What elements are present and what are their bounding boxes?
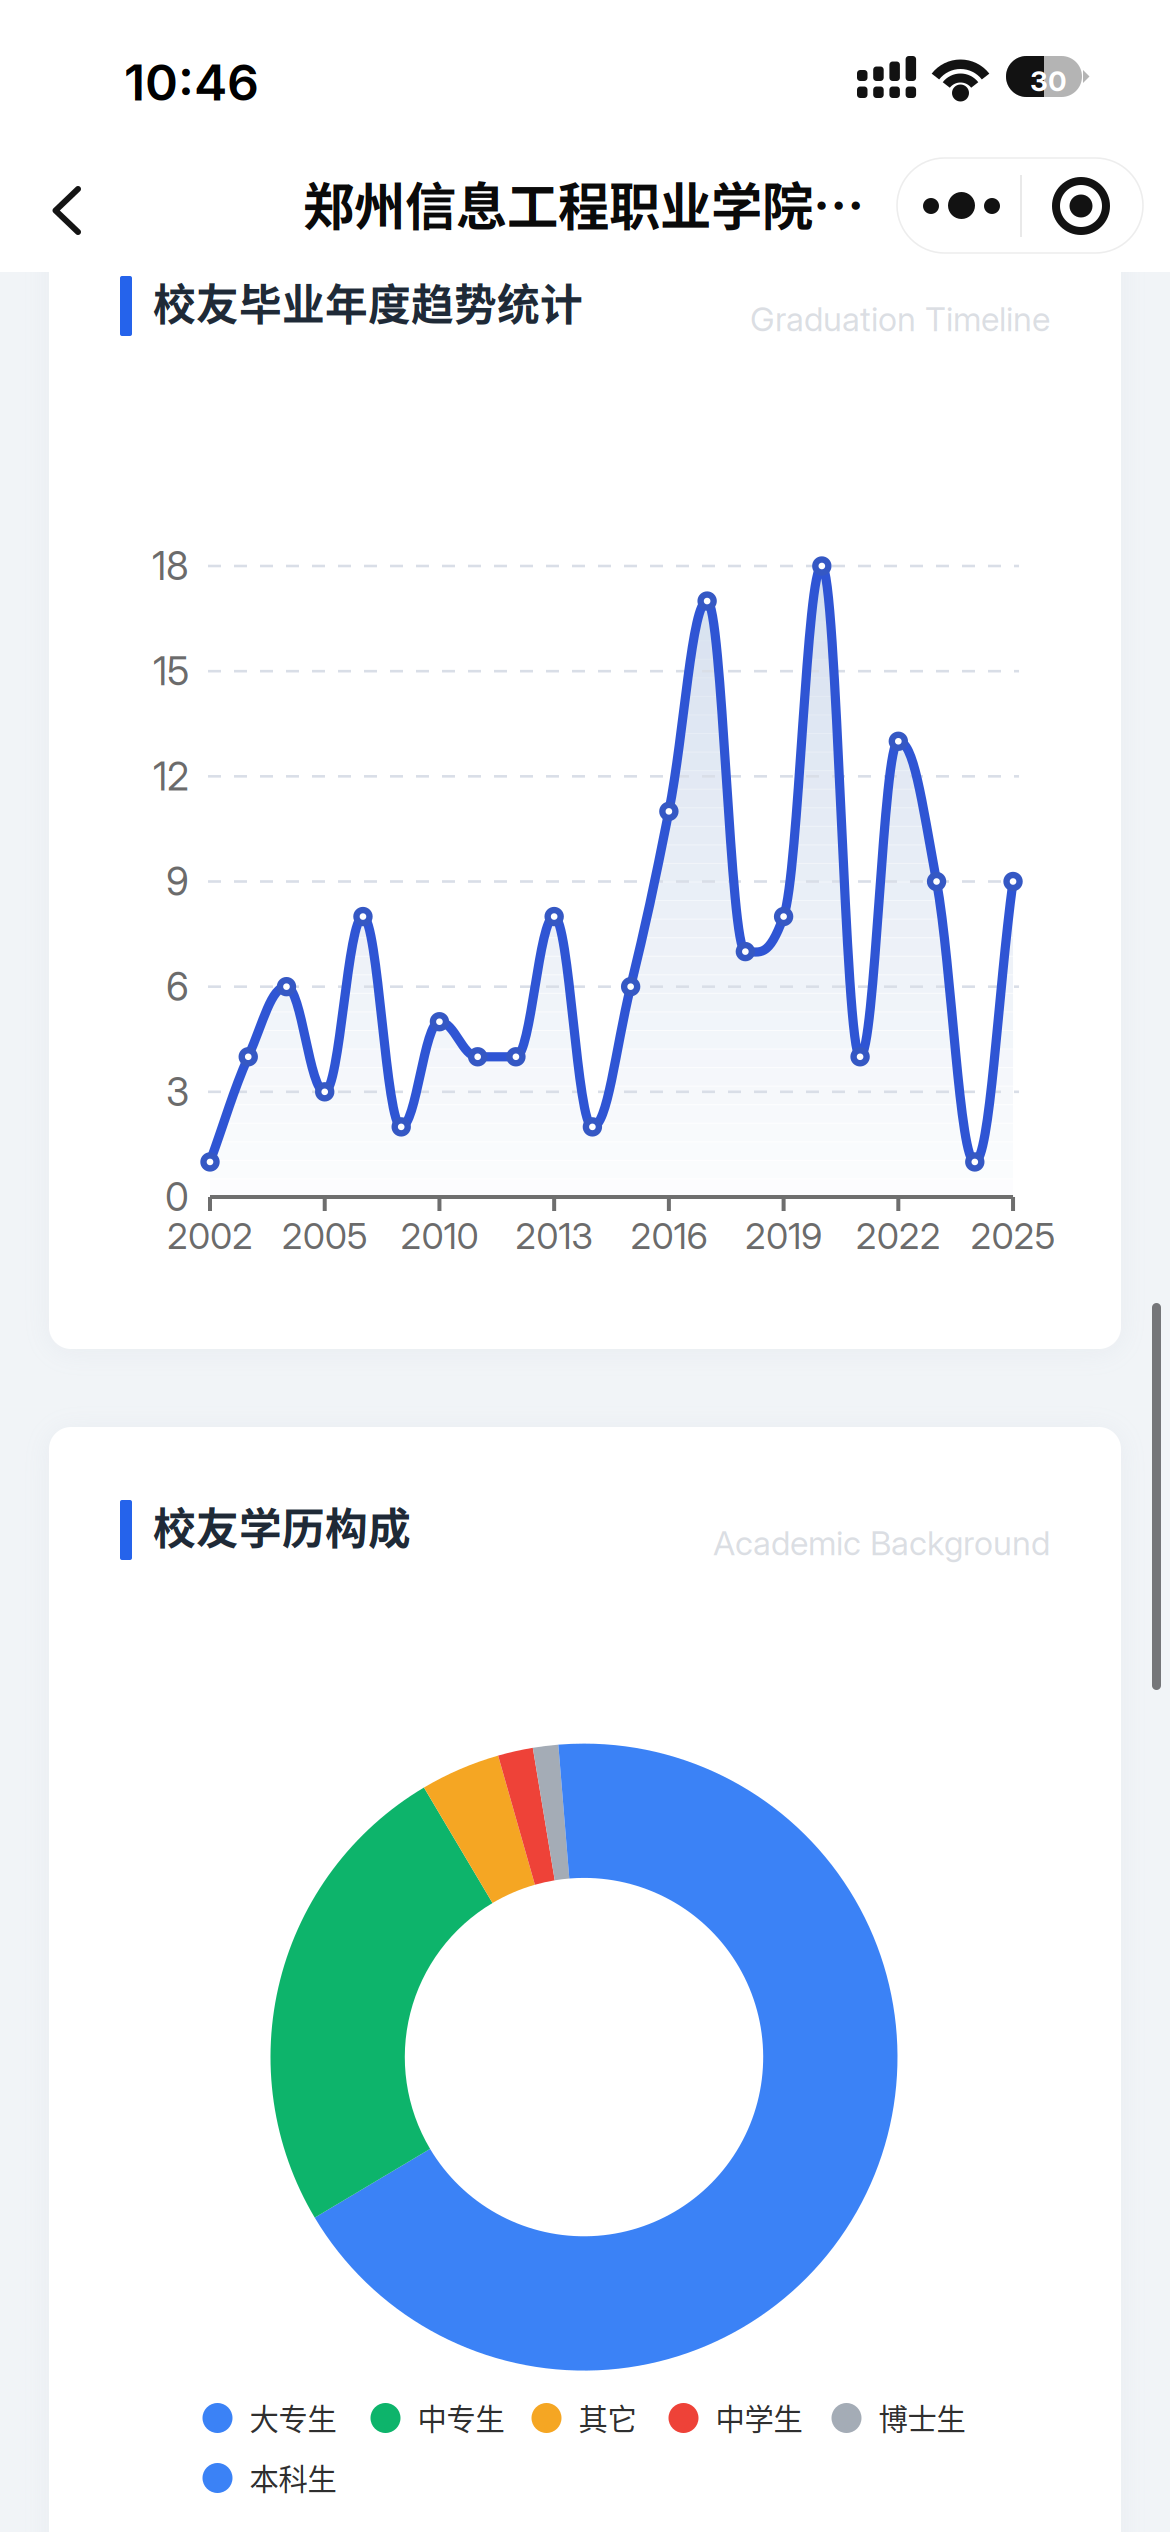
button[interactable]: Close mini program <box>1020 158 1143 253</box>
staticText: 2016 <box>630 1214 707 1258</box>
staticText: 2019 <box>745 1214 822 1258</box>
staticText: 校友毕业年度趋势统计 <box>153 271 583 333</box>
staticText: 18 <box>152 543 189 589</box>
staticText: 6 <box>166 963 189 1010</box>
staticText: 中专生 <box>417 2396 504 2438</box>
staticText: 12 <box>153 753 189 800</box>
staticText: Graduation Timeline <box>750 299 1050 339</box>
staticText: 2022 <box>856 1214 941 1258</box>
staticText: 其它 <box>578 2396 636 2438</box>
staticText: 郑州信息工程职业学院… <box>303 166 864 240</box>
staticText: 30 <box>1030 64 1067 98</box>
staticText: 2025 <box>970 1214 1055 1258</box>
staticText: 9 <box>166 858 189 905</box>
staticText: 2002 <box>167 1214 253 1258</box>
staticText: 10:46 <box>124 52 259 112</box>
staticText: 2013 <box>515 1214 593 1258</box>
staticText: 中学生 <box>715 2396 802 2438</box>
button[interactable]: Back <box>18 162 116 260</box>
staticText: Academic Background <box>713 1523 1050 1563</box>
staticText: 2005 <box>282 1214 368 1258</box>
button[interactable]: More <box>897 158 1020 253</box>
staticText: 3 <box>166 1068 189 1115</box>
staticText: 大专生 <box>249 2396 336 2438</box>
staticText: 博士生 <box>878 2396 965 2438</box>
staticText: 0 <box>165 1174 189 1220</box>
staticText: 2010 <box>400 1214 478 1258</box>
staticText: 15 <box>153 648 189 695</box>
staticText: 本科生 <box>249 2456 336 2498</box>
staticText: 校友学历构成 <box>153 1495 411 1557</box>
